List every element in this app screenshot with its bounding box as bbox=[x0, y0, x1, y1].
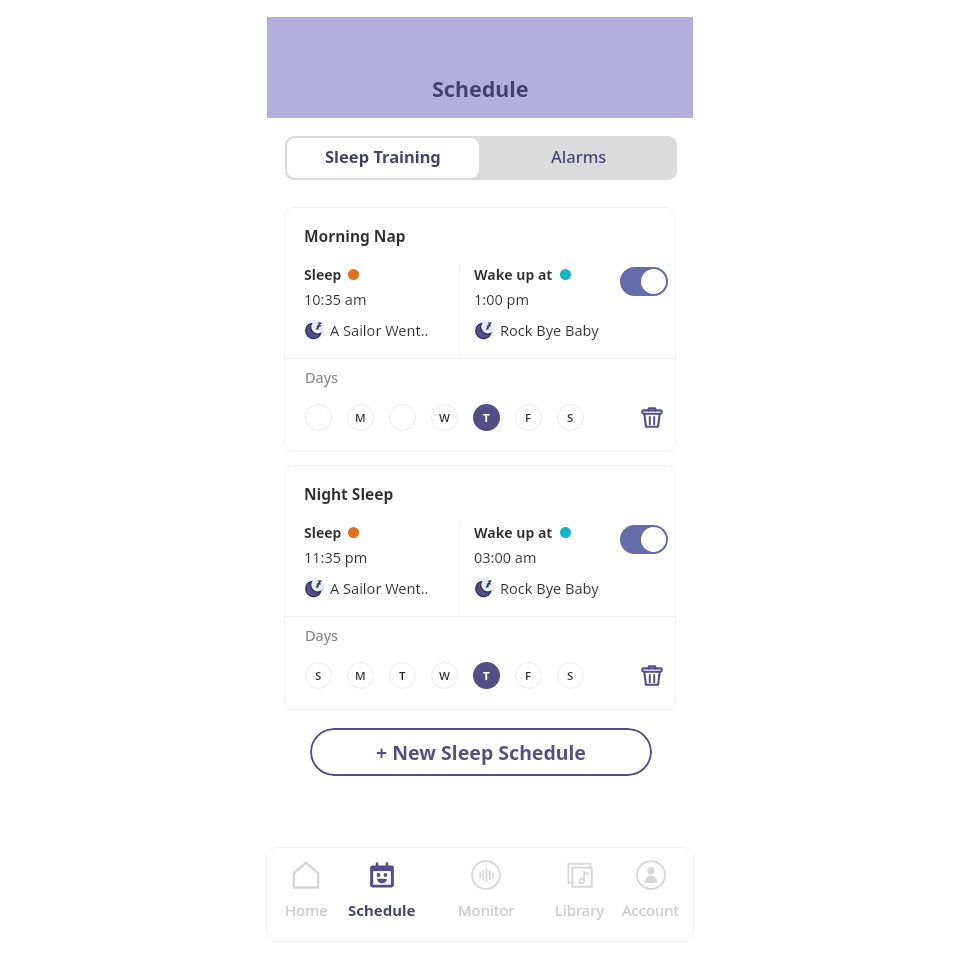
staticText: Sleep Training bbox=[325, 145, 441, 167]
button[interactable]: W bbox=[431, 404, 458, 431]
button[interactable]: Toggle schedule on bbox=[620, 267, 668, 296]
staticText: Account bbox=[622, 900, 680, 920]
staticText: Sleep bbox=[304, 523, 342, 542]
staticText: Days bbox=[305, 367, 339, 387]
staticText: A Sailor Went.. bbox=[330, 578, 429, 598]
button[interactable]: + New Sleep Schedule bbox=[310, 728, 652, 776]
staticText: Home bbox=[285, 900, 328, 920]
button[interactable]: Delete schedule bbox=[638, 662, 665, 689]
button[interactable]: S bbox=[305, 662, 332, 689]
button[interactable]: Library bbox=[536, 847, 624, 942]
button[interactable]: M bbox=[347, 662, 374, 689]
staticText: 1:00 pm bbox=[474, 289, 530, 309]
staticText: M bbox=[355, 668, 366, 684]
button[interactable]: S bbox=[557, 404, 584, 431]
button[interactable]: Toggle schedule on bbox=[620, 525, 668, 554]
button[interactable]: M bbox=[347, 404, 374, 431]
staticText: Alarms bbox=[551, 145, 607, 167]
button[interactable] bbox=[305, 404, 332, 431]
button[interactable]: T bbox=[389, 662, 416, 689]
button[interactable]: F bbox=[515, 662, 542, 689]
staticText: Night Sleep bbox=[304, 483, 394, 504]
staticText: M bbox=[355, 410, 366, 426]
staticText: W bbox=[439, 668, 450, 684]
button[interactable] bbox=[389, 404, 416, 431]
button[interactable]: Account bbox=[607, 847, 694, 942]
staticText: T bbox=[483, 668, 490, 684]
staticText: Morning Nap bbox=[304, 225, 406, 246]
button[interactable]: Delete schedule bbox=[638, 404, 665, 431]
staticText: Monitor bbox=[458, 900, 515, 920]
staticText: Rock Bye Baby bbox=[500, 578, 599, 598]
staticText: 10:35 am bbox=[304, 289, 367, 309]
button[interactable]: S bbox=[557, 662, 584, 689]
staticText: Sleep bbox=[304, 265, 342, 284]
staticText: T bbox=[399, 668, 406, 684]
staticText: T bbox=[483, 410, 490, 426]
button[interactable]: Schedule bbox=[338, 847, 426, 942]
button[interactable]: Alarms bbox=[481, 136, 677, 180]
staticText: Schedule bbox=[432, 74, 529, 103]
button[interactable]: T bbox=[473, 404, 500, 431]
staticText: W bbox=[439, 410, 450, 426]
staticText: 03:00 am bbox=[474, 547, 537, 567]
staticText: S bbox=[567, 410, 574, 426]
staticText: Days bbox=[305, 625, 339, 645]
staticText: Wake up at bbox=[474, 265, 553, 284]
staticText: Rock Bye Baby bbox=[500, 320, 599, 340]
button[interactable]: Home bbox=[266, 847, 350, 942]
staticText: + New Sleep Schedule bbox=[376, 739, 586, 766]
staticText: F bbox=[525, 668, 532, 684]
staticText: S bbox=[315, 668, 322, 684]
button[interactable]: T bbox=[473, 662, 500, 689]
staticText: 11:35 pm bbox=[304, 547, 368, 567]
button[interactable]: W bbox=[431, 662, 458, 689]
staticText: Wake up at bbox=[474, 523, 553, 542]
staticText: S bbox=[567, 668, 574, 684]
staticText: Schedule bbox=[348, 900, 416, 920]
button[interactable]: Sleep Training bbox=[287, 138, 479, 178]
button[interactable]: F bbox=[515, 404, 542, 431]
staticText: A Sailor Went.. bbox=[330, 320, 429, 340]
staticText: F bbox=[525, 410, 532, 426]
staticText: Library bbox=[555, 900, 605, 920]
button[interactable]: Monitor bbox=[442, 847, 530, 942]
